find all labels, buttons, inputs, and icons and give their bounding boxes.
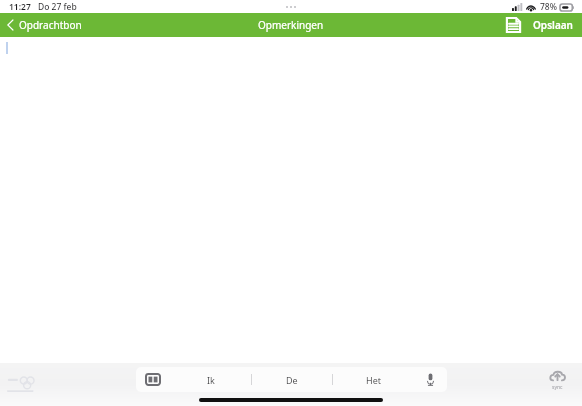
staticText: Opslaan: [533, 18, 573, 32]
button[interactable]: Opslaan: [527, 13, 582, 37]
staticText: 11:27: [9, 1, 31, 13]
button[interactable]: De: [252, 367, 332, 392]
button[interactable]: Het: [333, 367, 413, 392]
staticText: Ik: [207, 374, 215, 386]
staticText: Opdrachtbon: [19, 18, 82, 32]
button[interactable]: Keyboard layout: [136, 367, 170, 392]
staticText: Do 27 feb: [38, 1, 77, 13]
button[interactable]: Dictate: [413, 367, 447, 392]
staticText: Opmerkingen: [258, 18, 324, 32]
staticText: Het: [366, 374, 381, 386]
staticText: sync: [552, 384, 563, 391]
button[interactable]: Opdrachtbon: [0, 13, 92, 37]
staticText: 78%: [540, 1, 557, 13]
button[interactable]: sync: [545, 366, 570, 395]
staticText: De: [286, 374, 298, 386]
button[interactable]: Ik: [170, 367, 251, 392]
button[interactable]: Document: [500, 13, 527, 37]
